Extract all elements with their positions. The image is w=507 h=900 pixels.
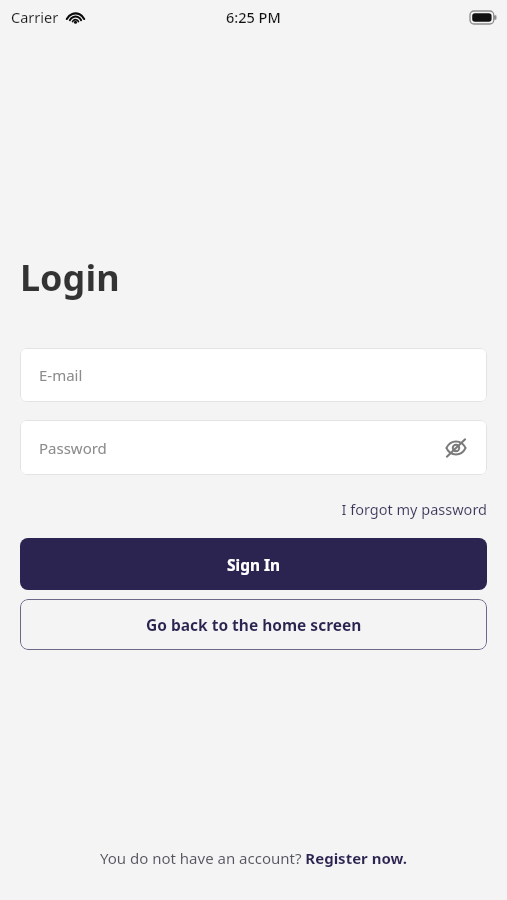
staticText: Sign In <box>227 554 281 575</box>
staticText: Password <box>39 438 107 458</box>
button[interactable]: E-mail <box>20 348 487 402</box>
button[interactable]: I forgot my password <box>320 496 487 522</box>
button[interactable]: Sign In <box>20 538 487 590</box>
staticText: I forgot my password <box>341 499 487 519</box>
staticText: Go back to the home screen <box>146 614 362 635</box>
staticText: Carrier <box>11 7 59 27</box>
staticText: Login <box>20 253 120 302</box>
button[interactable]: Password <box>20 420 487 475</box>
staticText: E-mail <box>39 365 83 385</box>
staticText: 6:25 PM <box>226 7 281 27</box>
button[interactable]: Show password <box>438 430 474 466</box>
staticText: You do not have an account? Register now… <box>100 848 407 868</box>
button[interactable]: Go back to the home screen <box>20 599 487 650</box>
button[interactable]: You do not have an account? Register now… <box>0 843 507 873</box>
